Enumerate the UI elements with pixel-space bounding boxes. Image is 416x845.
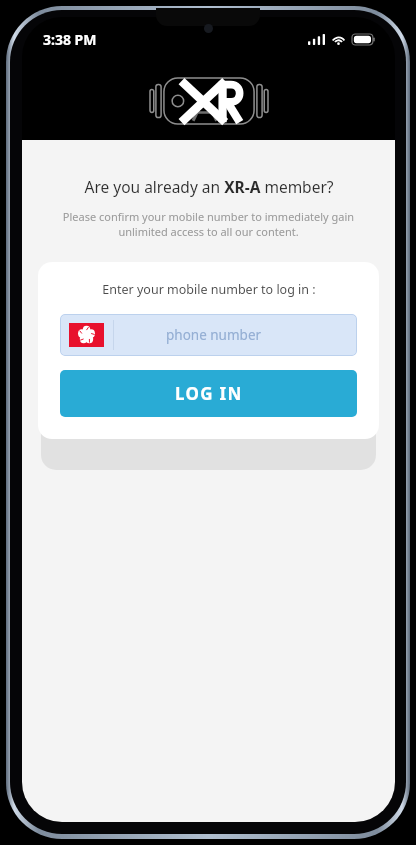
staticText: 3:38 PM xyxy=(43,30,97,49)
button[interactable]: LOG IN xyxy=(60,370,357,417)
staticText: Please confirm your mobile number to imm… xyxy=(38,209,379,239)
staticText: Are you already an XR-A member? xyxy=(84,176,334,197)
staticText: LOG IN xyxy=(175,382,243,405)
button[interactable]: Hong Kong country code xyxy=(60,314,357,356)
other: Hong Kong country code xyxy=(69,323,104,347)
staticText: phone number xyxy=(166,326,262,344)
staticText: Enter your mobile number to log in : xyxy=(102,281,316,298)
other: XR-A logo xyxy=(150,78,268,124)
